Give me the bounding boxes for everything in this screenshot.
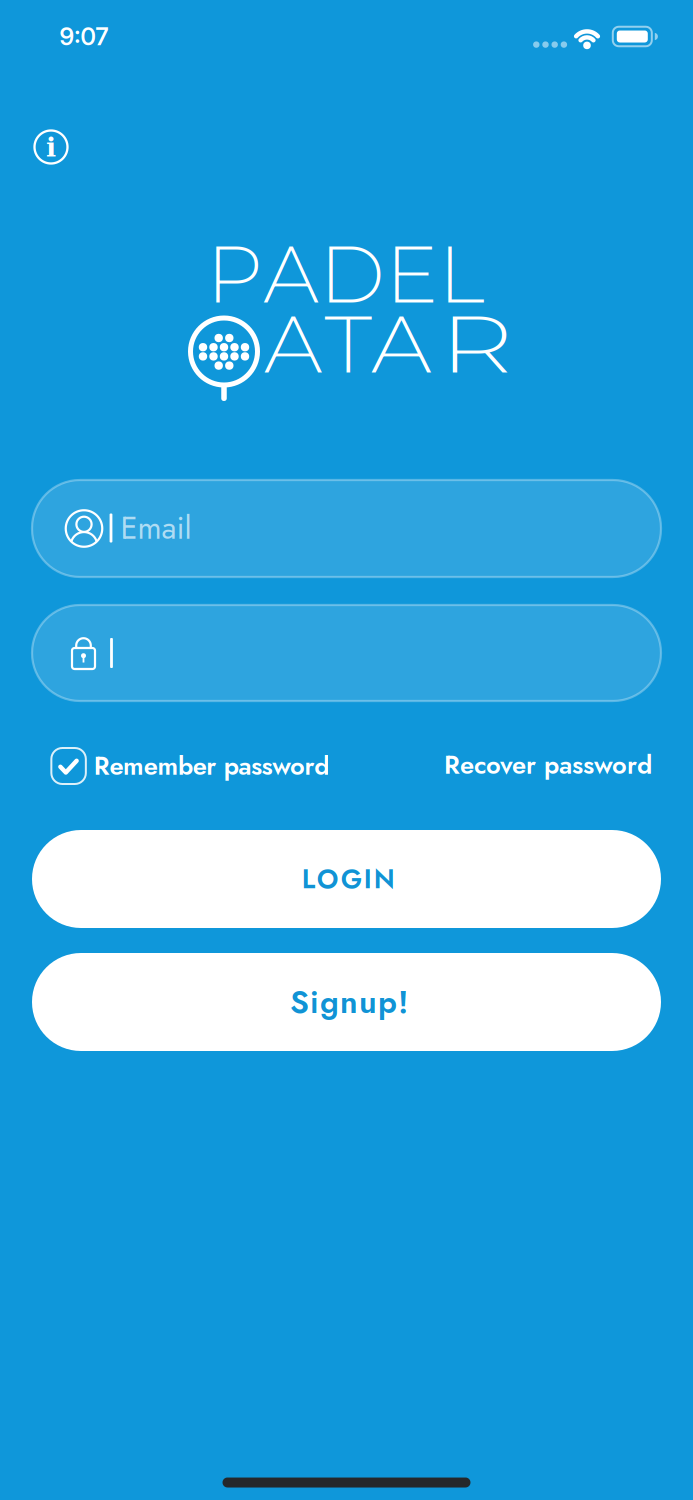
staticText: 9:07 bbox=[59, 22, 108, 51]
staticText: A bbox=[373, 296, 429, 392]
staticText: Recover password bbox=[444, 747, 652, 783]
staticText: R bbox=[448, 296, 505, 392]
staticText: G bbox=[341, 860, 362, 898]
button[interactable]: Recover password bbox=[444, 747, 652, 783]
staticText: T bbox=[326, 296, 370, 392]
staticText: ! bbox=[398, 979, 408, 1025]
staticText: E bbox=[385, 226, 438, 322]
staticText: Remember password bbox=[94, 748, 329, 784]
staticText: O bbox=[317, 860, 339, 898]
staticText: i bbox=[310, 979, 319, 1025]
staticText: L bbox=[302, 860, 315, 898]
staticText: N bbox=[374, 860, 395, 898]
staticText: P bbox=[206, 226, 263, 322]
button[interactable]: Remember password bbox=[52, 747, 325, 783]
staticText: p bbox=[378, 979, 397, 1025]
staticText: n bbox=[340, 979, 358, 1025]
staticText: A bbox=[265, 296, 321, 392]
button[interactable]: S bbox=[32, 953, 661, 1051]
button[interactable]: Email bbox=[32, 480, 661, 577]
staticText: i bbox=[46, 131, 56, 163]
staticText: I bbox=[364, 860, 372, 898]
staticText: Email bbox=[120, 506, 191, 550]
staticText: g bbox=[320, 979, 339, 1025]
button[interactable]: Password bbox=[32, 605, 661, 701]
staticText: u bbox=[359, 979, 377, 1025]
staticText: D bbox=[319, 226, 385, 322]
staticText: A bbox=[263, 226, 319, 322]
button[interactable]: L bbox=[32, 830, 661, 928]
button[interactable]: Info bbox=[29, 125, 73, 169]
staticText: S bbox=[290, 979, 309, 1025]
staticText: L bbox=[438, 226, 484, 322]
